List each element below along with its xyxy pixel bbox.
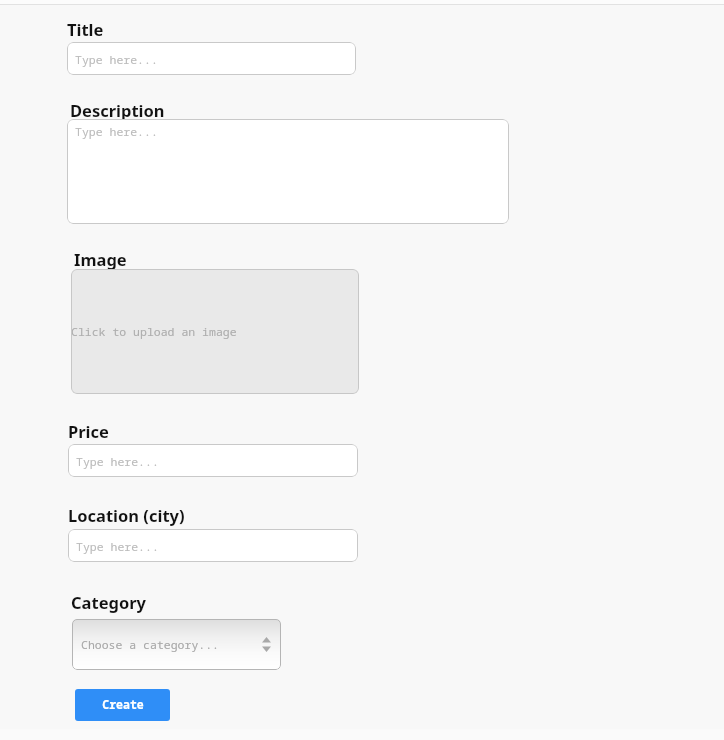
- staticText: Description: [70, 99, 165, 121]
- staticText: Type here...: [75, 52, 158, 68]
- button[interactable]: Type here...: [68, 444, 358, 477]
- staticText: Type here...: [76, 539, 159, 555]
- staticText: Choose a category...: [81, 637, 219, 653]
- staticText: Price: [68, 420, 109, 442]
- staticText: Create: [102, 697, 144, 713]
- staticText: Click to upload an image: [71, 324, 359, 340]
- staticText: Image: [74, 248, 127, 270]
- staticText: Type here...: [75, 124, 158, 140]
- staticText: Location (city): [68, 504, 185, 526]
- button[interactable]: Type here...: [68, 529, 358, 562]
- button[interactable]: Create: [75, 689, 170, 721]
- button[interactable]: Choose a category...: [72, 619, 281, 670]
- staticText: Title: [67, 18, 104, 40]
- staticText: Type here...: [76, 454, 159, 470]
- button[interactable]: Click to upload an image: [71, 269, 359, 394]
- staticText: Category: [71, 591, 147, 613]
- button[interactable]: Type here...: [67, 42, 356, 75]
- button[interactable]: Type here...: [67, 119, 509, 224]
